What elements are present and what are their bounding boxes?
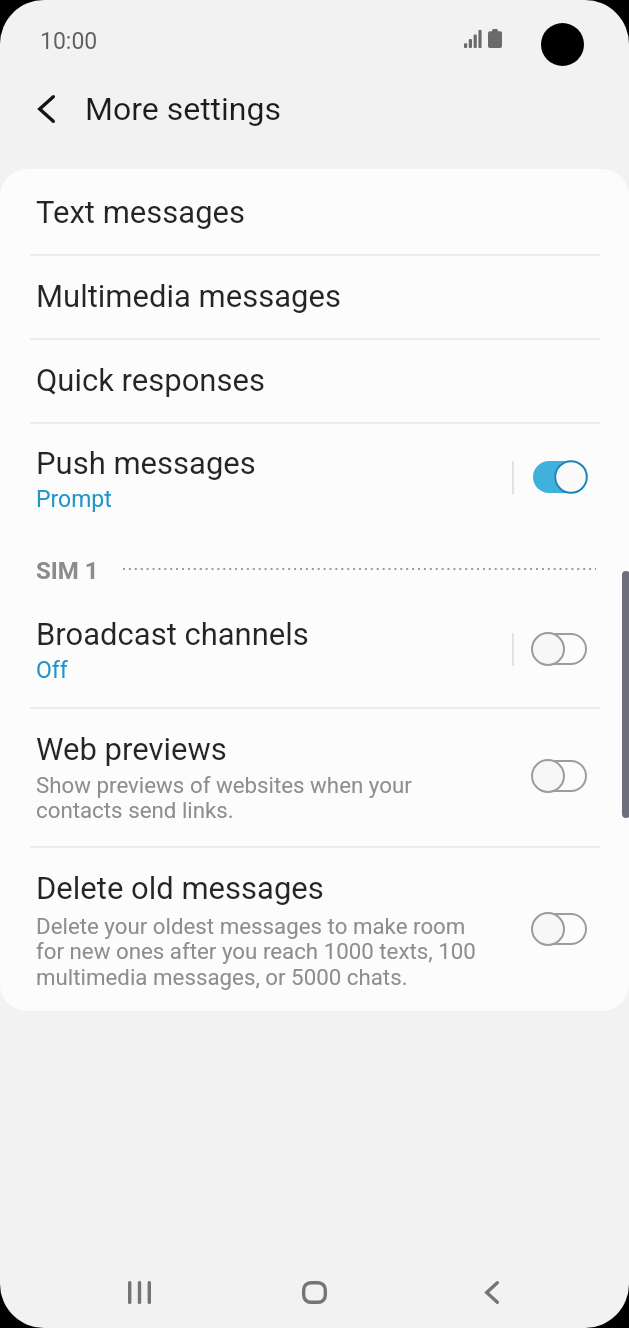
button[interactable]: Back xyxy=(439,1255,544,1328)
button[interactable]: Text messages xyxy=(0,170,629,254)
staticText: Off xyxy=(36,657,68,684)
button[interactable]: Web previews xyxy=(0,709,629,846)
staticText: 10:00 xyxy=(40,28,98,55)
staticText: Delete old messages xyxy=(36,870,324,906)
button[interactable]: Switch, on xyxy=(523,451,597,503)
staticText: Quick responses xyxy=(36,362,265,398)
button[interactable]: Push messages xyxy=(0,424,629,528)
staticText: Multimedia messages xyxy=(36,278,341,314)
button[interactable]: Recent apps xyxy=(87,1255,192,1328)
button[interactable]: Switch, off xyxy=(523,623,597,675)
button[interactable]: Multimedia messages xyxy=(0,256,629,340)
staticText: Show previews of websites when your cont… xyxy=(36,772,412,824)
staticText: Text messages xyxy=(36,194,245,230)
staticText: Prompt xyxy=(36,486,112,513)
button[interactable]: Navigate up xyxy=(22,85,70,133)
button[interactable]: Switch, off xyxy=(523,903,597,955)
staticText: More settings xyxy=(85,90,281,128)
staticText: Delete your oldest messages to make room… xyxy=(36,913,476,991)
button[interactable]: Broadcast channels xyxy=(0,592,629,707)
button[interactable]: Delete old messages xyxy=(0,848,629,1011)
staticText: SIM 1 xyxy=(36,557,99,585)
button[interactable]: Home xyxy=(262,1255,367,1328)
button[interactable]: Switch, off xyxy=(523,750,597,802)
button[interactable]: Quick responses xyxy=(0,340,629,424)
staticText: Broadcast channels xyxy=(36,616,309,652)
staticText: Web previews xyxy=(36,731,227,767)
staticText: Push messages xyxy=(36,445,256,481)
